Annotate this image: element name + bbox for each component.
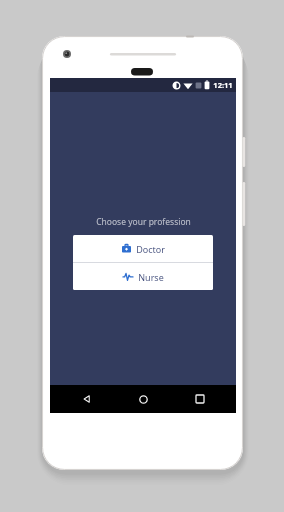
button[interactable]: Doctor <box>73 235 213 262</box>
staticText: Choose your profession <box>96 216 191 228</box>
staticText: Nurse <box>138 271 164 283</box>
other: Nurse <box>123 272 133 281</box>
button[interactable]: Nurse <box>73 263 213 290</box>
button[interactable]: Home <box>123 385 163 413</box>
staticText: Doctor <box>136 243 165 255</box>
button[interactable]: Recent apps <box>180 385 220 413</box>
staticText: 12:11 <box>213 80 233 90</box>
button[interactable]: Back <box>67 385 107 413</box>
other: Doctor <box>122 244 131 253</box>
